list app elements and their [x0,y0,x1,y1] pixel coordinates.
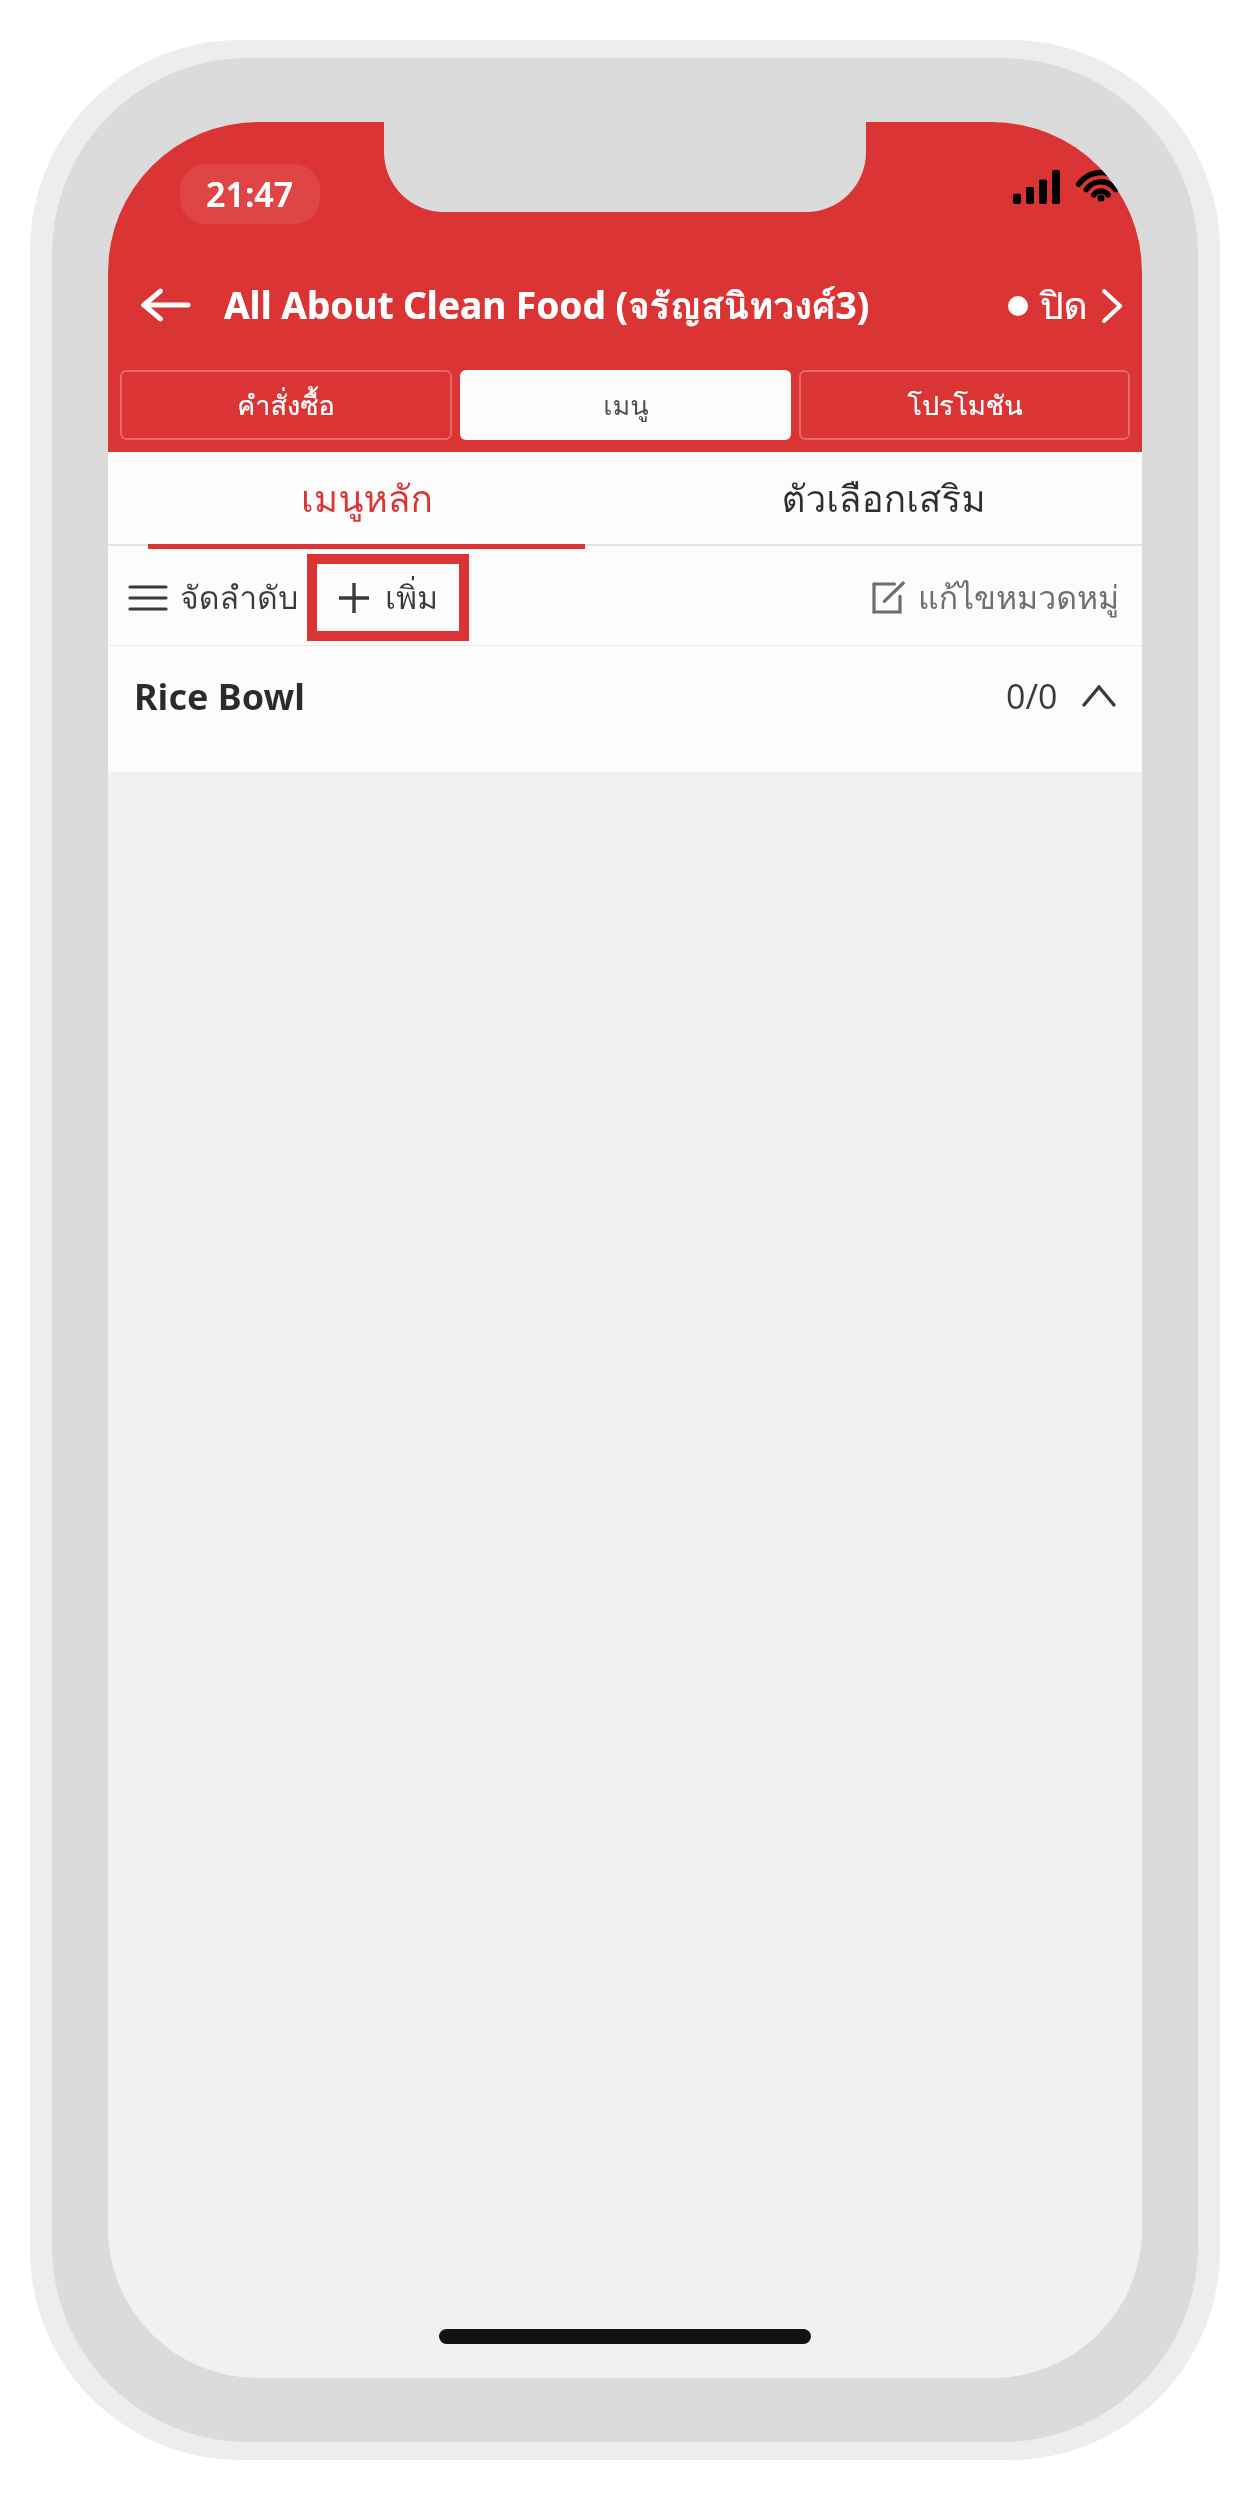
staticText: 21:47 [206,171,294,217]
staticText: ปิด [1040,276,1088,335]
button[interactable]: จัดลำดับ [130,560,299,635]
staticText: เพิ่ม [385,572,439,623]
button[interactable]: ตัวเลือกเสริม [625,452,1142,544]
staticText: เมนูหลัก [301,469,433,528]
button[interactable]: เพิ่ม [317,564,459,631]
button[interactable]: เมนู [460,370,791,440]
staticText: จัดลำดับ [180,572,299,623]
button[interactable]: ปิด [988,264,1142,347]
button[interactable]: Rice Bowl [108,646,1142,746]
staticText: คำสั่งซื้อ [237,384,335,427]
button[interactable]: เมนูหลัก [108,452,625,544]
button[interactable]: Back [122,262,208,348]
staticText: เมนู [603,384,649,427]
button[interactable]: แก้ไขหมวดหมู่ [870,560,1120,635]
staticText: Rice Bowl [134,672,306,721]
staticText: ตัวเลือกเสริม [781,469,986,528]
staticText: 0/0 [1006,673,1058,719]
button[interactable]: โปรโมชัน [799,370,1130,440]
button[interactable]: คำสั่งซื้อ [120,370,452,440]
staticText: All About Clean Food (จรัญสนิทวงศ์3) [224,276,870,335]
staticText: แก้ไขหมวดหมู่ [918,572,1120,623]
staticText: โปรโมชัน [907,384,1023,427]
